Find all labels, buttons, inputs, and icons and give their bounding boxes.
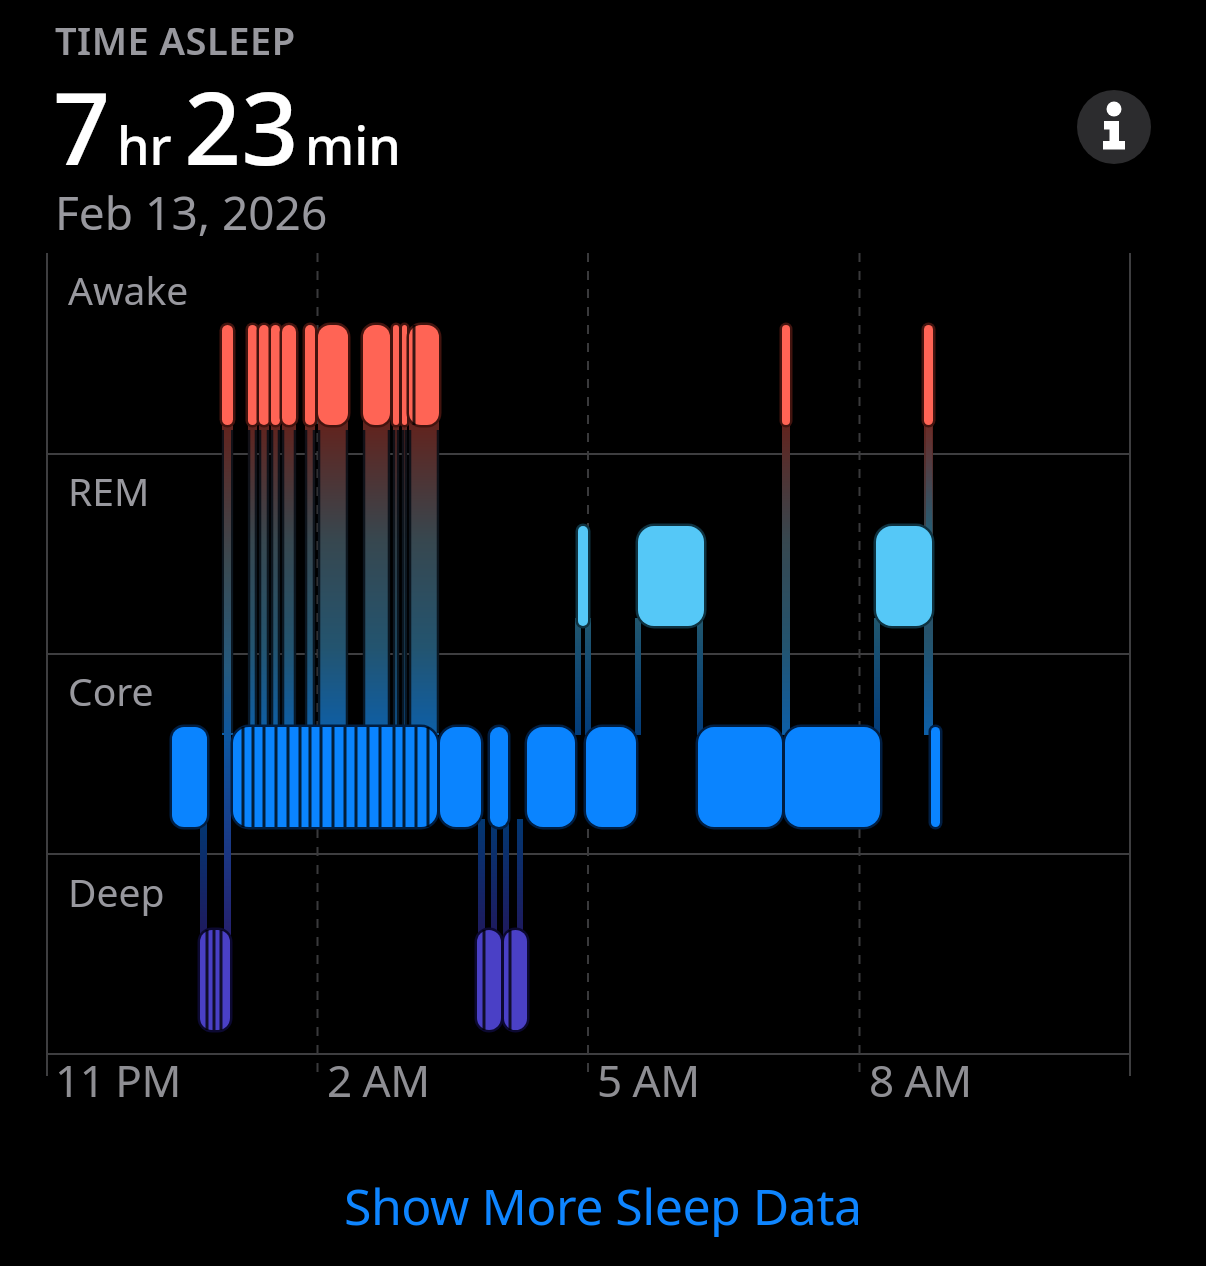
staticText: TIME ASLEEP xyxy=(55,14,296,66)
staticText: 2 AM xyxy=(327,1050,430,1110)
button[interactable] xyxy=(1077,90,1151,164)
staticText: hr xyxy=(117,109,172,180)
button[interactable]: Show More Sleep Data xyxy=(344,1172,862,1240)
staticText: 11 PM xyxy=(55,1050,181,1110)
staticText: 8 AM xyxy=(869,1050,972,1110)
staticText: Show More Sleep Data xyxy=(344,1172,862,1240)
staticText: Deep xyxy=(68,865,165,918)
staticText: Core xyxy=(68,664,154,717)
staticText: min xyxy=(305,109,401,180)
staticText: 23 xyxy=(184,58,299,194)
staticText: 5 AM xyxy=(597,1050,700,1110)
staticText: 7 xyxy=(53,58,111,194)
staticText: Feb 13, 2026 xyxy=(55,181,328,244)
staticText: REM xyxy=(68,464,150,517)
staticText: Awake xyxy=(68,263,189,316)
